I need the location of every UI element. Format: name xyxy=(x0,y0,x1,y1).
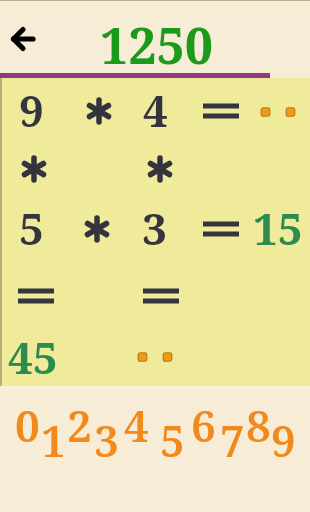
staticText: 7 xyxy=(220,410,245,466)
staticText: 4 xyxy=(143,80,168,140)
staticText: 5 xyxy=(160,410,185,466)
staticText: 3 xyxy=(142,198,167,258)
button[interactable]: 0 xyxy=(12,395,42,451)
staticText: 4 xyxy=(124,395,149,451)
button[interactable]: 1 xyxy=(38,410,68,466)
staticText: 45 xyxy=(8,327,58,387)
staticText: 15 xyxy=(253,198,303,258)
staticText: 3 xyxy=(94,410,119,466)
staticText: 9 xyxy=(271,410,296,466)
staticText: 1 xyxy=(41,410,66,466)
staticText: 1250 xyxy=(100,11,213,75)
staticText: 8 xyxy=(246,395,271,451)
button[interactable]: 2 xyxy=(64,395,94,451)
button[interactable]: 7 xyxy=(217,410,247,466)
staticText: 6 xyxy=(191,395,216,451)
button[interactable]: 6 xyxy=(188,395,218,451)
button[interactable]: 3 xyxy=(91,410,121,466)
button[interactable]: 4 xyxy=(121,395,151,451)
staticText: 0 xyxy=(15,395,40,451)
button[interactable] xyxy=(5,21,41,57)
button[interactable]: 5 xyxy=(157,410,187,466)
staticText: 5 xyxy=(19,198,44,258)
staticText: 9 xyxy=(19,80,44,140)
staticText: 2 xyxy=(67,395,92,451)
button[interactable]: 8 xyxy=(243,395,273,451)
button[interactable]: 9 xyxy=(268,410,298,466)
